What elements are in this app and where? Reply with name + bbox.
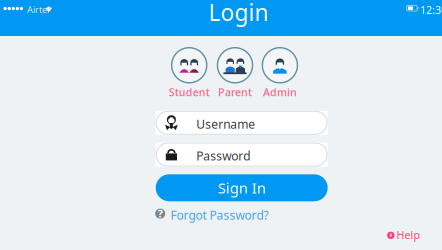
button[interactable]: ? xyxy=(155,204,285,222)
button[interactable]: Help xyxy=(387,227,423,243)
staticText: Sign In xyxy=(218,178,266,198)
button[interactable]: Username xyxy=(156,111,328,135)
staticText: Login xyxy=(208,0,268,27)
button[interactable]: Admin xyxy=(256,47,304,99)
staticText: 12:30 xyxy=(420,3,442,17)
staticText: Airtel xyxy=(27,3,49,16)
staticText: Admin xyxy=(263,85,297,99)
button[interactable]: Password xyxy=(156,143,328,167)
staticText: ? xyxy=(158,206,163,221)
button[interactable]: Parent xyxy=(211,47,259,99)
staticText: Password xyxy=(196,148,250,164)
staticText: Forgot Password? xyxy=(170,207,268,223)
staticText: Username xyxy=(196,116,255,132)
staticText: Help xyxy=(396,228,420,242)
staticText: Student xyxy=(169,85,210,99)
button[interactable]: Sign In xyxy=(156,174,328,201)
button[interactable]: Student xyxy=(165,47,213,99)
staticText: Parent xyxy=(218,85,252,99)
